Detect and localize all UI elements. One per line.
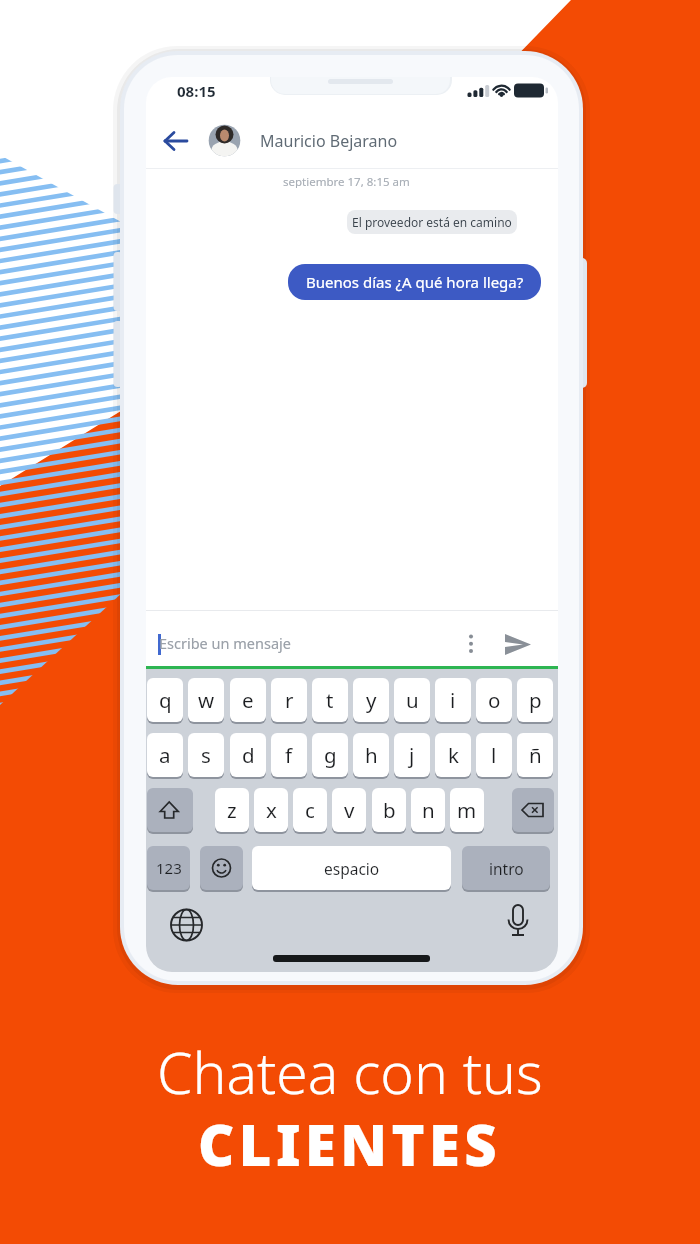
button[interactable]: g — [312, 733, 348, 777]
staticText: Mauricio Bejarano — [260, 130, 398, 152]
button[interactable]: i — [435, 678, 471, 722]
staticText: p — [529, 686, 542, 714]
button[interactable]: 123 — [147, 846, 190, 890]
button[interactable]: k — [435, 733, 471, 777]
button[interactable]: l — [476, 733, 512, 777]
button[interactable]: u — [394, 678, 430, 722]
staticText: e — [242, 686, 254, 714]
staticText: w — [198, 686, 215, 714]
staticText: q — [159, 686, 172, 714]
staticText: Escribe un mensaje — [159, 633, 291, 653]
button[interactable] — [158, 125, 194, 155]
button[interactable]: d — [230, 733, 266, 777]
button[interactable]: h — [353, 733, 389, 777]
button[interactable]: ñ — [517, 733, 553, 777]
staticText: h — [365, 741, 378, 769]
button[interactable]: e — [230, 678, 266, 722]
staticText: k — [448, 741, 459, 769]
staticText: ñ — [529, 741, 542, 769]
button[interactable]: x — [254, 788, 288, 832]
staticText: c — [305, 796, 315, 824]
button[interactable] — [204, 121, 464, 159]
staticText: 08:15 — [177, 81, 216, 101]
button[interactable]: o — [476, 678, 512, 722]
staticText: g — [324, 741, 337, 769]
staticText: r — [285, 686, 294, 714]
staticText: v — [344, 796, 355, 824]
staticText: Chatea con tus — [157, 1033, 543, 1097]
button[interactable] — [496, 627, 540, 661]
staticText: t — [326, 686, 334, 714]
staticText: s — [201, 741, 211, 769]
button[interactable]: v — [332, 788, 366, 832]
button[interactable]: n — [411, 788, 445, 832]
staticText: j — [409, 741, 415, 769]
button[interactable]: a — [147, 733, 183, 777]
button[interactable] — [498, 897, 538, 941]
button[interactable]: p — [517, 678, 553, 722]
staticText: u — [406, 686, 419, 714]
button[interactable]: s — [188, 733, 224, 777]
staticText: l — [491, 741, 497, 769]
button[interactable]: q — [147, 678, 183, 722]
button[interactable]: w — [188, 678, 224, 722]
button[interactable] — [512, 788, 554, 832]
staticText: x — [266, 796, 277, 824]
button[interactable] — [457, 627, 485, 661]
button[interactable]: t — [312, 678, 348, 722]
button[interactable] — [152, 625, 452, 661]
staticText: d — [242, 741, 255, 769]
button[interactable]: El proveedor está en camino — [347, 210, 517, 234]
button[interactable] — [200, 846, 243, 890]
button[interactable]: r — [271, 678, 307, 722]
staticText: 123 — [156, 858, 182, 878]
staticText: b — [383, 796, 396, 824]
button[interactable]: espacio — [252, 846, 451, 890]
staticText: y — [366, 686, 377, 714]
staticText: f — [285, 741, 293, 769]
button[interactable]: j — [394, 733, 430, 777]
staticText: a — [159, 741, 171, 769]
staticText: Buenos días ¿A qué hora llega? — [306, 272, 524, 292]
staticText: n — [422, 796, 435, 824]
staticText: intro — [489, 858, 524, 879]
staticText: i — [450, 686, 456, 714]
staticText: El proveedor está en camino — [352, 214, 512, 230]
button[interactable]: b — [372, 788, 406, 832]
button[interactable]: f — [271, 733, 307, 777]
button[interactable]: y — [353, 678, 389, 722]
button[interactable]: intro — [462, 846, 550, 890]
staticText: o — [488, 686, 501, 714]
staticText: z — [227, 796, 237, 824]
button[interactable]: c — [293, 788, 327, 832]
staticText: espacio — [324, 858, 380, 879]
staticText: septiembre 17, 8:15 am — [283, 174, 410, 188]
staticText: m — [457, 796, 477, 824]
staticText: CLIENTES — [198, 1106, 502, 1172]
button[interactable]: Buenos días ¿A qué hora llega? — [288, 264, 541, 300]
button[interactable] — [167, 905, 207, 945]
button[interactable] — [147, 788, 193, 832]
button[interactable]: z — [215, 788, 249, 832]
button[interactable]: m — [450, 788, 484, 832]
